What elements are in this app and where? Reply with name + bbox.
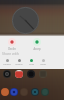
button[interactable]: Devices — [15, 59, 23, 66]
staticText: Devices — [15, 63, 23, 66]
button[interactable]: Settings — [3, 70, 11, 78]
button[interactable]: Calendar — [15, 70, 23, 78]
staticText: Chat — [29, 63, 34, 66]
button[interactable]: Camera — [27, 70, 35, 78]
button[interactable]: Browser — [20, 88, 28, 96]
button[interactable]: More — [39, 59, 47, 66]
button[interactable]: Maps — [31, 88, 39, 96]
staticText: Decline — [8, 47, 16, 51]
button[interactable]: Calculator — [39, 70, 47, 78]
staticText: More — [40, 63, 46, 66]
button[interactable]: Apps — [41, 88, 49, 96]
button[interactable]: Messages — [10, 88, 18, 96]
button[interactable]: Clock widget — [12, 7, 39, 34]
button[interactable]: Accept — [33, 38, 41, 51]
button[interactable]: Nearby — [3, 59, 11, 66]
staticText: Accept — [33, 47, 41, 51]
button[interactable]: Chat — [27, 59, 35, 66]
staticText: Nearby — [3, 63, 11, 66]
button[interactable]: Phone — [1, 88, 9, 96]
button[interactable]: Decline — [8, 38, 16, 51]
staticText: Share with — [2, 51, 19, 56]
